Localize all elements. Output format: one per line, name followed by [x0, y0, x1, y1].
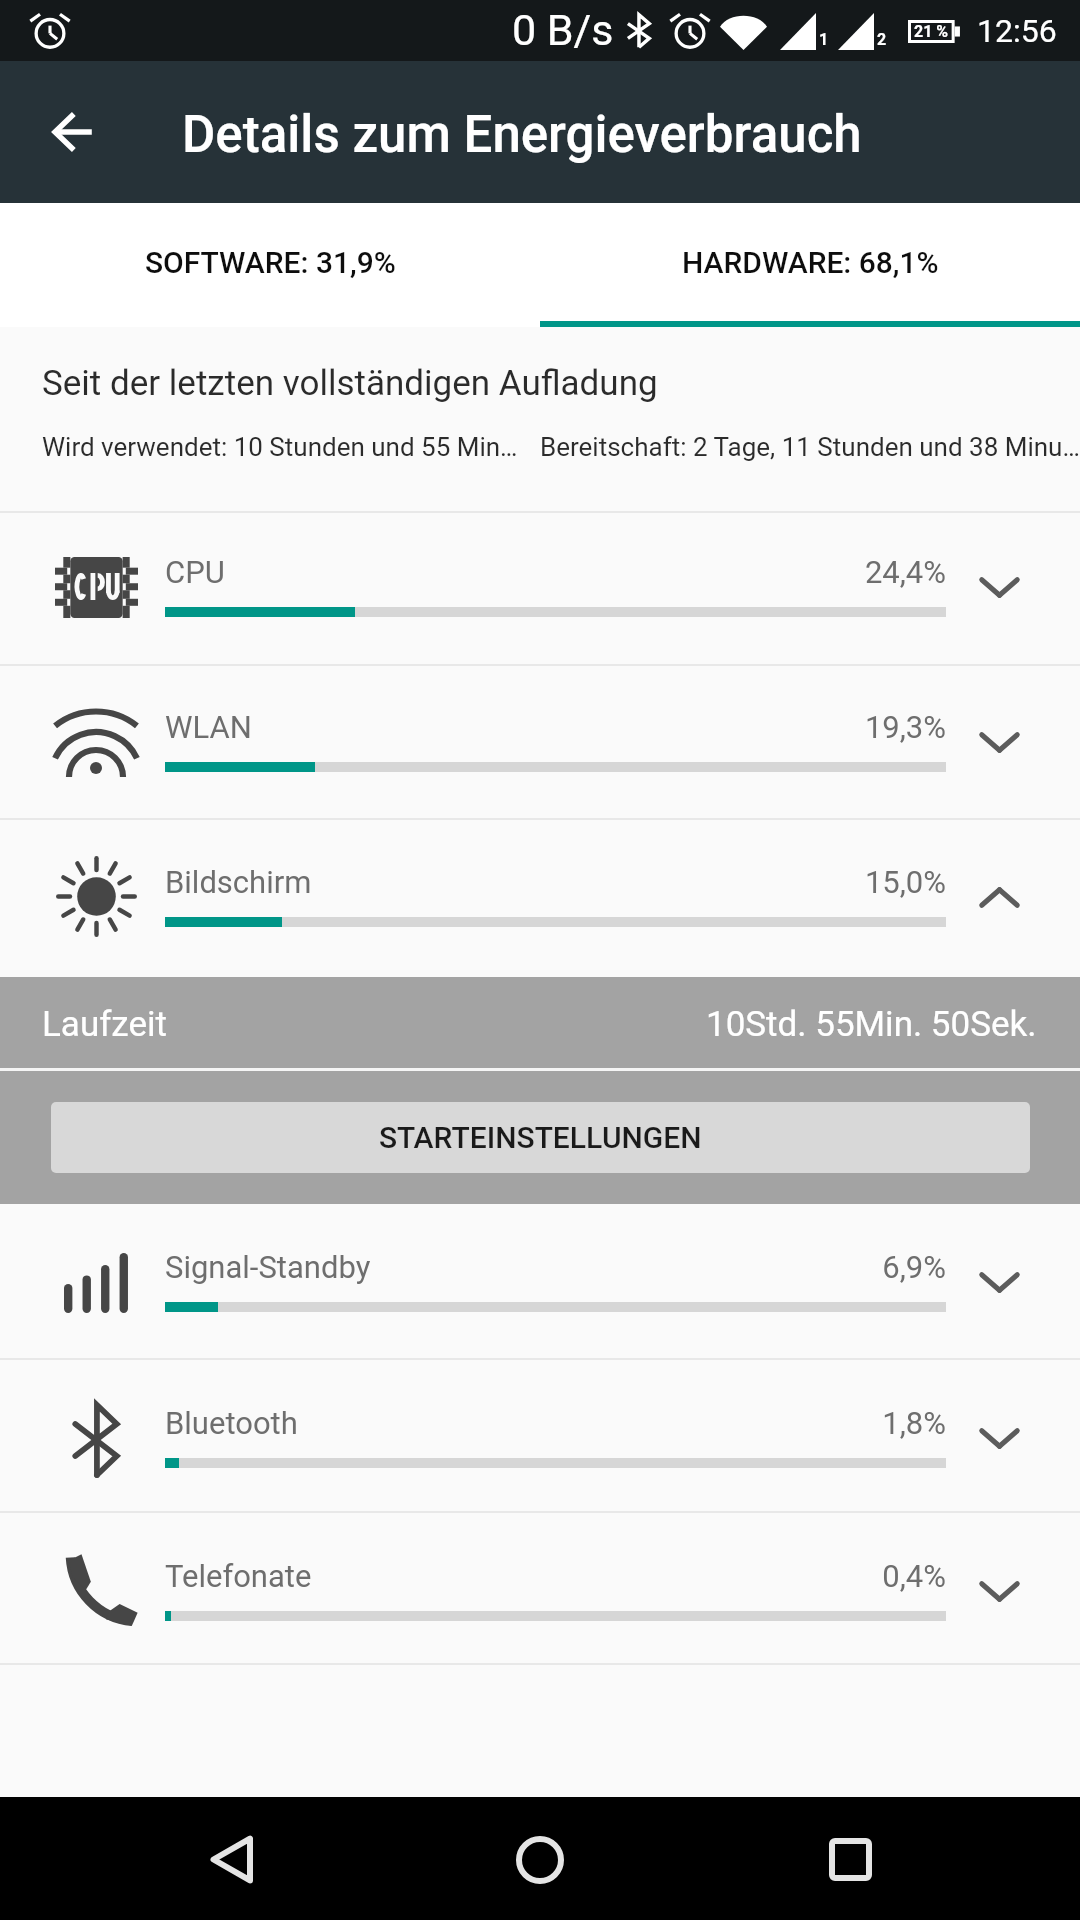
- staticText: 12:56: [977, 12, 1057, 50]
- button[interactable]: CPU: [0, 513, 1080, 664]
- staticText: Seit der letzten vollständigen Aufladung: [42, 363, 658, 404]
- staticText: 0 B/s: [512, 5, 614, 55]
- staticText: 15,0%: [766, 864, 946, 900]
- button[interactable]: Recents: [790, 1797, 911, 1920]
- staticText: Telefonate: [165, 1558, 312, 1594]
- staticText: 21 %: [914, 22, 949, 41]
- staticText: 0,4%: [766, 1558, 946, 1594]
- button[interactable]: WLAN: [0, 666, 1080, 818]
- staticText: 1,8%: [766, 1405, 946, 1441]
- button[interactable]: Bluetooth: [0, 1360, 1080, 1511]
- staticText: Signal-Standby: [165, 1249, 371, 1285]
- button[interactable]: Expand: [934, 1226, 1064, 1338]
- staticText: 24,4%: [766, 554, 946, 590]
- button[interactable]: Signal-Standby: [0, 1204, 1080, 1358]
- button[interactable]: SOFTWARE: 31,9%: [0, 203, 540, 321]
- button[interactable]: Bildschirm: [0, 820, 1080, 977]
- button[interactable]: STARTEINSTELLUNGEN: [51, 1102, 1030, 1173]
- staticText: Bluetooth: [165, 1405, 298, 1441]
- button[interactable]: HARDWARE: 68,1%: [540, 203, 1080, 321]
- button[interactable]: Home: [479, 1797, 600, 1920]
- button[interactable]: Collapse: [934, 841, 1064, 953]
- button[interactable]: Expand: [934, 1535, 1064, 1647]
- staticText: STARTEINSTELLUNGEN: [379, 1120, 702, 1155]
- button[interactable]: Expand: [934, 686, 1064, 798]
- button[interactable]: Expand: [934, 531, 1064, 643]
- staticText: 1: [819, 30, 829, 49]
- staticText: SOFTWARE: 31,9%: [145, 245, 396, 280]
- staticText: Bildschirm: [165, 864, 312, 900]
- staticText: 6,9%: [766, 1249, 946, 1285]
- staticText: HARDWARE: 68,1%: [682, 245, 939, 280]
- staticText: 2: [877, 30, 887, 49]
- staticText: Laufzeit: [42, 1004, 167, 1045]
- button[interactable]: Telefonate: [0, 1513, 1080, 1663]
- staticText: 10Std. 55Min. 50Sek.: [706, 1004, 1037, 1045]
- button[interactable]: Expand: [934, 1382, 1064, 1494]
- staticText: Bereitschaft: 2 Tage, 11 Stunden und 38 …: [540, 432, 1080, 462]
- staticText: WLAN: [165, 709, 252, 745]
- staticText: Details zum Energieverbrauch: [182, 105, 862, 165]
- staticText: Wird verwendet: 10 Stunden und 55 Min…: [42, 432, 540, 462]
- button[interactable]: Back: [25, 84, 121, 180]
- button[interactable]: Back: [170, 1797, 291, 1920]
- staticText: 19,3%: [766, 709, 946, 745]
- staticText: CPU: [165, 554, 225, 590]
